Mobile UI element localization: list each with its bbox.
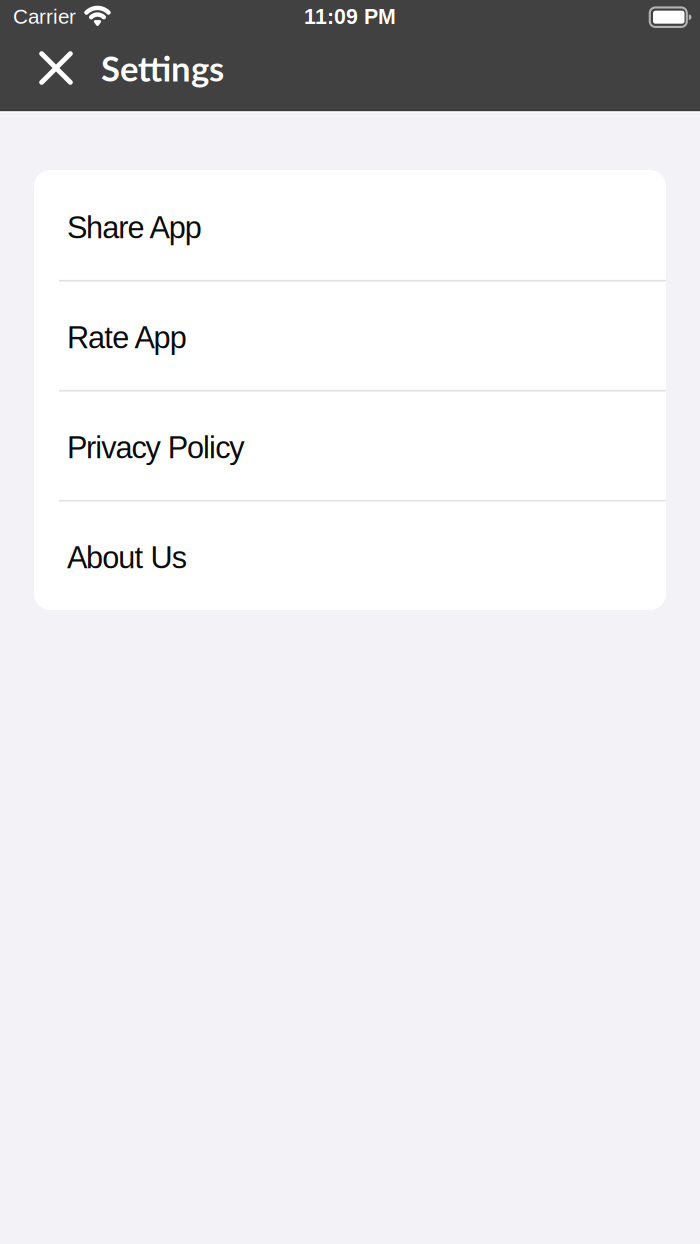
button[interactable]: Rate App (34, 280, 666, 390)
staticText: About Us (67, 540, 187, 575)
staticText: Settings (101, 47, 224, 89)
staticText: Privacy Policy (67, 430, 244, 465)
staticText: Rate App (67, 320, 187, 355)
staticText: Share App (67, 210, 202, 245)
button[interactable]: About Us (34, 500, 666, 610)
button[interactable]: Privacy Policy (34, 390, 666, 500)
button[interactable]: Share App (34, 170, 666, 280)
button[interactable]: Close (29, 41, 83, 95)
staticText: 11:09 PM (304, 5, 396, 28)
staticText: Carrier (13, 5, 76, 28)
